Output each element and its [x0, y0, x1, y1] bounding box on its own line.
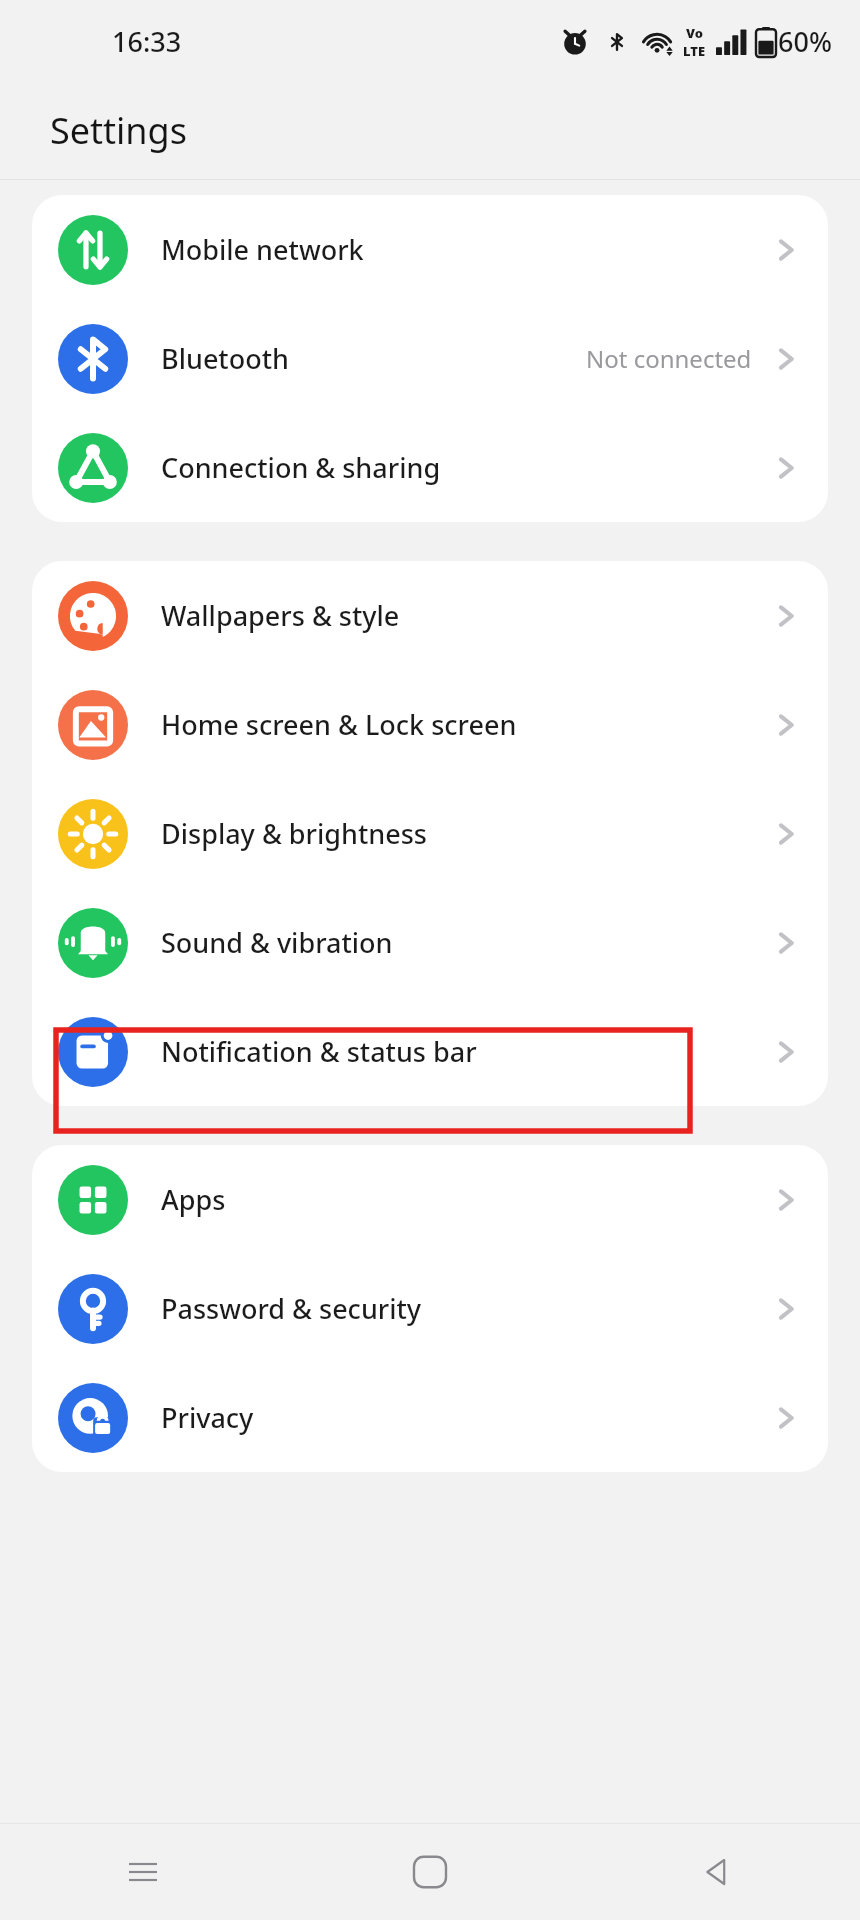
button[interactable]: Notification & status bar [32, 997, 828, 1106]
button[interactable]: Privacy [32, 1363, 828, 1472]
staticText: Notification & status bar [161, 1033, 477, 1070]
button[interactable]: Recent apps [0, 1824, 286, 1920]
button[interactable]: Back [573, 1824, 860, 1920]
staticText: Apps [161, 1181, 226, 1218]
staticText: Mobile network [161, 231, 364, 268]
staticText: LTE [683, 42, 706, 60]
staticText: Home screen & Lock screen [161, 706, 517, 743]
button[interactable]: Apps [32, 1145, 828, 1254]
staticText: 60% [778, 23, 832, 60]
staticText: Not connected [586, 342, 752, 375]
staticText: 16:33 [112, 23, 182, 60]
staticText: Bluetooth [161, 340, 289, 377]
staticText: Wallpapers & style [161, 597, 400, 634]
button[interactable]: Home screen & Lock screen [32, 670, 828, 779]
staticText: Password & security [161, 1290, 422, 1327]
button[interactable]: Connection & sharing [32, 413, 828, 522]
button[interactable]: Bluetooth [32, 304, 828, 413]
staticText: Settings [50, 106, 187, 155]
staticText: Sound & vibration [161, 924, 393, 961]
button[interactable]: Password & security [32, 1254, 828, 1363]
button[interactable]: Wallpapers & style [32, 561, 828, 670]
staticText: Privacy [161, 1399, 254, 1436]
button[interactable]: Sound & vibration [32, 888, 828, 997]
button[interactable]: Display & brightness [32, 779, 828, 888]
staticText: Vo [686, 24, 704, 42]
staticText: Display & brightness [161, 815, 427, 852]
button[interactable]: Home [286, 1824, 573, 1920]
staticText: Connection & sharing [161, 449, 441, 486]
button[interactable]: Mobile network [32, 195, 828, 304]
